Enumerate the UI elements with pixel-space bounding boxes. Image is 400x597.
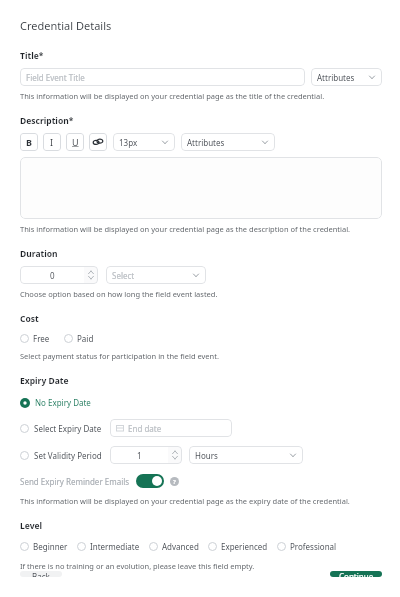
button[interactable]: Set Validity Period [20, 450, 102, 461]
button[interactable]: Insert link [89, 133, 107, 151]
button[interactable]: Help [170, 477, 179, 486]
staticText: Credential Details [20, 18, 112, 33]
staticText: Experienced [221, 541, 268, 552]
staticText: Free [33, 333, 50, 344]
staticText: Field Event Title [26, 72, 85, 83]
button[interactable]: 0 [20, 266, 98, 284]
button[interactable]: 13px [113, 133, 175, 151]
staticText: 1 [137, 450, 142, 461]
staticText: Paid [77, 333, 94, 344]
staticText: 13px [119, 137, 138, 148]
staticText: Cost [20, 313, 39, 325]
staticText: Expiry Date [20, 375, 69, 387]
staticText: Choose option based on how long the fiel… [20, 289, 218, 299]
staticText: If there is no training or an evolution,… [20, 561, 255, 571]
button[interactable]: Paid [64, 332, 94, 345]
button[interactable]: Continue [330, 571, 382, 577]
button[interactable] [20, 157, 382, 219]
staticText: Description* [20, 115, 74, 127]
staticText: 0 [50, 270, 55, 281]
button[interactable]: I [43, 133, 61, 151]
staticText: I [50, 136, 54, 148]
staticText: This information will be displayed on yo… [20, 91, 325, 101]
staticText: No Expiry Date [35, 397, 91, 408]
staticText: Professional [290, 541, 337, 552]
button[interactable]: End date [110, 419, 232, 437]
staticText: B [26, 136, 32, 148]
staticText: Title* [20, 50, 44, 62]
staticText: Continue [339, 571, 374, 577]
button[interactable]: Send expiry reminder emails toggle [136, 474, 164, 488]
staticText: Level [20, 520, 43, 532]
button[interactable]: Attributes [311, 68, 382, 86]
button[interactable]: Intermediate [77, 540, 140, 553]
other: Increase or decrease value [84, 266, 98, 284]
staticText: This information will be displayed on yo… [20, 224, 351, 234]
staticText: Intermediate [90, 541, 140, 552]
staticText: Attributes [187, 137, 225, 148]
staticText: Send Expiry Reminder Emails [20, 476, 130, 487]
staticText: Hours [195, 450, 218, 461]
staticText: Select Expiry Date [34, 423, 102, 434]
button[interactable]: B [20, 133, 38, 151]
button[interactable]: 1 [110, 446, 182, 464]
button[interactable]: Hours [189, 446, 303, 464]
button[interactable]: Field Event Title [20, 68, 305, 86]
button[interactable]: Beginner [20, 540, 68, 553]
button[interactable]: U [66, 133, 84, 151]
button[interactable]: Select [106, 266, 206, 284]
button[interactable]: Experienced [208, 540, 268, 553]
staticText: End date [128, 423, 162, 434]
staticText: Back [32, 571, 50, 577]
staticText: Advanced [162, 541, 199, 552]
button[interactable]: No Expiry Date [20, 397, 91, 408]
staticText: Set Validity Period [34, 450, 102, 461]
staticText: Beginner [33, 541, 68, 552]
staticText: Select payment status for participation … [20, 351, 219, 361]
button[interactable]: Free [20, 332, 50, 345]
button[interactable]: Attributes [181, 133, 275, 151]
button[interactable]: Advanced [149, 540, 199, 553]
staticText: This information will be displayed on yo… [20, 496, 350, 506]
staticText: Select [112, 270, 135, 281]
staticText: Attributes [317, 72, 355, 83]
button[interactable]: Select Expiry Date [20, 423, 102, 434]
button[interactable]: Back [20, 571, 62, 577]
staticText: ? [173, 478, 176, 486]
staticText: U [72, 136, 79, 148]
button[interactable]: Professional [277, 540, 337, 553]
staticText: Duration [20, 248, 58, 260]
other: Increase or decrease value [168, 446, 182, 464]
